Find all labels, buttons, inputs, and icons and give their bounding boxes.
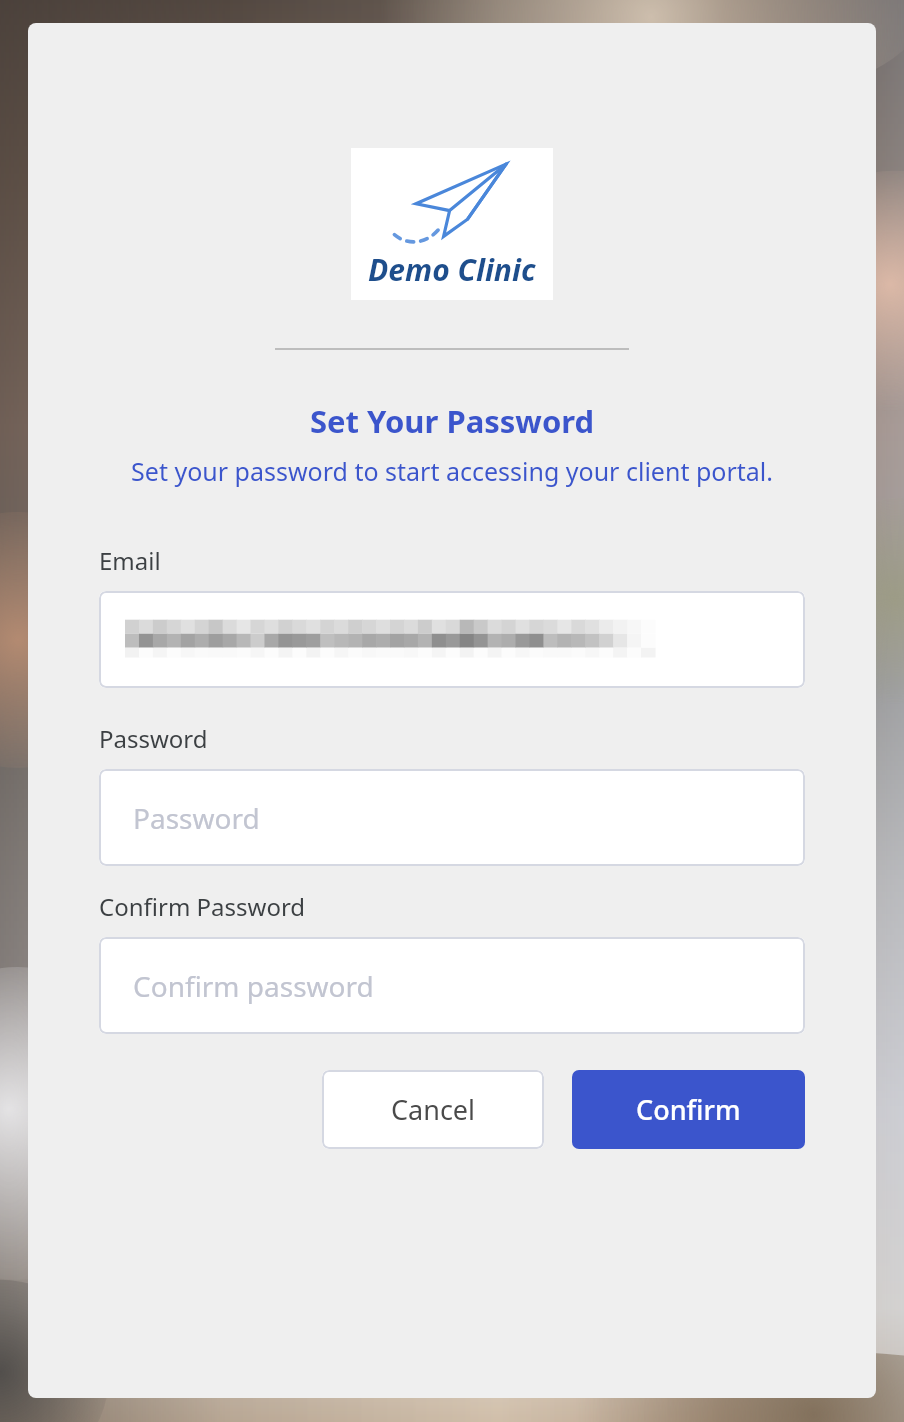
staticText: Password xyxy=(133,799,260,837)
staticText: Confirm Password xyxy=(99,890,306,923)
staticText: Confirm password xyxy=(133,967,374,1005)
staticText: Cancel xyxy=(391,1091,476,1128)
staticText: Demo Clinic xyxy=(368,249,536,290)
staticText: Password xyxy=(99,722,208,755)
button[interactable]: Confirm xyxy=(572,1070,805,1149)
staticText: Email xyxy=(99,544,161,577)
button[interactable]: Password xyxy=(99,769,805,866)
button[interactable] xyxy=(99,591,805,688)
staticText: Set your password to start accessing you… xyxy=(102,454,802,488)
staticText: Confirm xyxy=(636,1091,741,1128)
button[interactable]: Confirm password xyxy=(99,937,805,1034)
staticText: Set Your Password xyxy=(310,400,595,442)
button[interactable]: Cancel xyxy=(322,1070,544,1149)
